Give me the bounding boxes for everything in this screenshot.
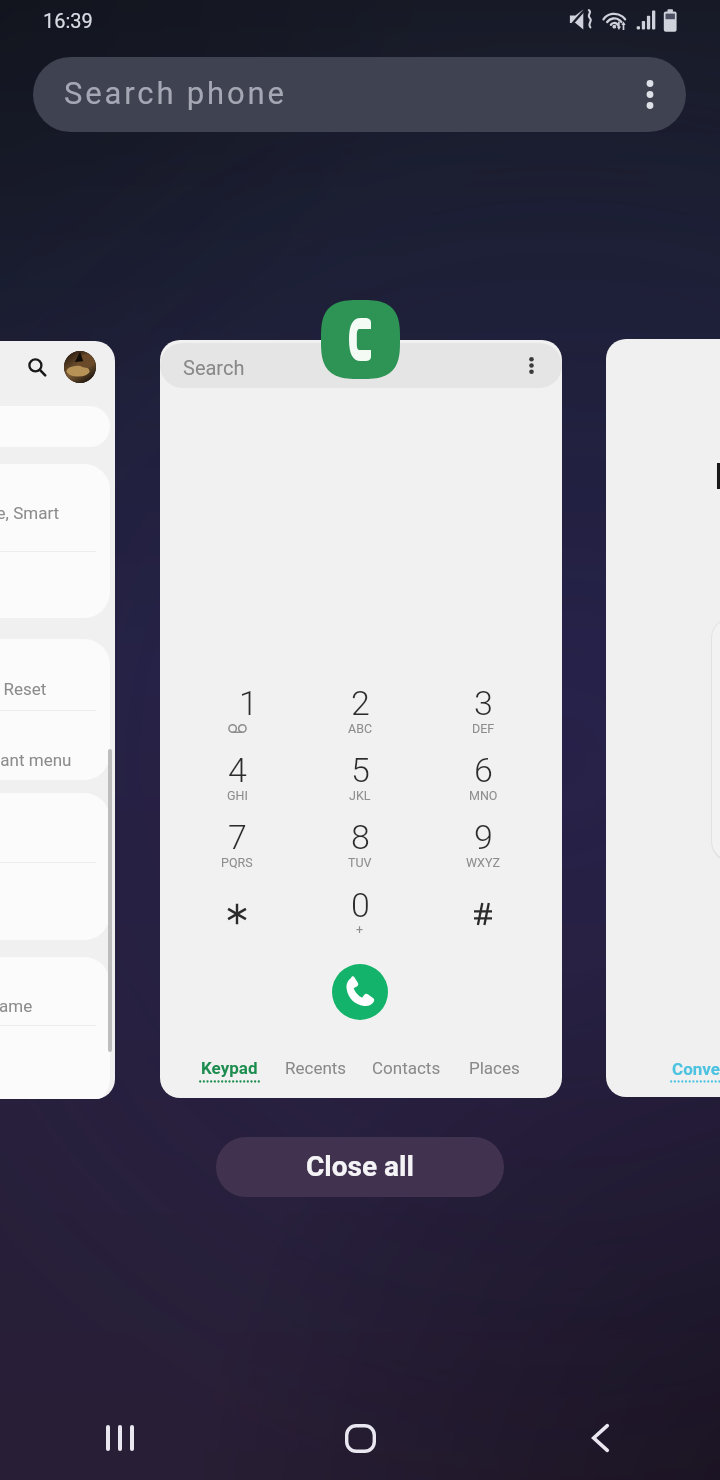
staticText: 1	[239, 683, 258, 723]
staticText: 8	[351, 817, 370, 857]
staticText: 5	[351, 750, 370, 790]
button[interactable]	[299, 671, 422, 738]
staticText: Search	[183, 356, 245, 379]
staticText: Close all	[306, 1150, 414, 1183]
button[interactable]: Search settings	[17, 347, 57, 387]
staticText: Conversations	[672, 1059, 720, 1079]
button[interactable]: Home	[240, 1402, 480, 1474]
button[interactable]	[299, 805, 422, 872]
staticText: +	[356, 922, 364, 937]
staticText: stant menu	[0, 750, 72, 770]
button[interactable]: Places	[442, 1058, 546, 1098]
staticText: ame	[0, 996, 33, 1016]
staticText: Search phone	[64, 75, 287, 111]
staticText: JKL	[349, 788, 371, 803]
staticText: WXYZ	[466, 855, 500, 870]
staticText: GHI	[227, 788, 248, 803]
button[interactable]: Call	[332, 964, 388, 1020]
button[interactable]: Messages	[606, 339, 720, 1097]
staticText: 3	[474, 683, 493, 723]
button[interactable]: Phone app	[321, 300, 400, 379]
staticText: PQRS	[221, 855, 253, 870]
button[interactable]: Recents	[0, 1402, 240, 1474]
button[interactable]: Profile	[64, 351, 96, 383]
button[interactable]	[176, 671, 299, 738]
button[interactable]	[299, 873, 422, 940]
button[interactable]: ame	[0, 957, 110, 1099]
button[interactable]: re, Smart	[0, 464, 110, 618]
staticText: 16:39	[43, 9, 93, 32]
button[interactable]: Recents	[264, 1058, 368, 1098]
staticText: Recents	[285, 1058, 347, 1078]
staticText: TUV	[348, 855, 372, 870]
button[interactable]: Search phone	[33, 57, 686, 132]
button[interactable]	[176, 738, 299, 805]
staticText: 0	[351, 885, 370, 925]
button[interactable]	[422, 805, 545, 872]
staticText: Contacts	[372, 1058, 441, 1078]
button[interactable]	[176, 873, 299, 940]
staticText: 9	[474, 817, 493, 857]
staticText: 6	[474, 750, 493, 790]
button[interactable]: More options	[626, 57, 674, 132]
button[interactable]	[0, 793, 110, 940]
button[interactable]: Back	[480, 1402, 720, 1474]
staticText: MNO	[469, 788, 498, 803]
button[interactable]: Search	[160, 340, 562, 1098]
button[interactable]: Close all	[216, 1137, 504, 1197]
staticText: 2	[351, 683, 370, 723]
staticText: ABC	[348, 721, 373, 736]
staticText: Places	[469, 1058, 520, 1078]
button[interactable]	[176, 805, 299, 872]
staticText: Keypad	[201, 1058, 258, 1078]
button[interactable]: Keypad	[177, 1058, 281, 1098]
button[interactable]: Search	[160, 343, 562, 388]
button[interactable]	[422, 738, 545, 805]
staticText: 7	[228, 817, 247, 857]
staticText: , Reset	[0, 679, 47, 699]
button[interactable]: , Reset	[0, 639, 110, 780]
staticText: DEF	[472, 721, 495, 736]
button[interactable]	[299, 738, 422, 805]
button[interactable]: Search settings	[0, 341, 115, 1099]
staticText: Messages	[714, 456, 720, 498]
button[interactable]	[422, 671, 545, 738]
button[interactable]: Contacts	[354, 1058, 458, 1098]
button[interactable]: Dialer options	[515, 343, 547, 388]
staticText: re, Smart	[0, 503, 60, 523]
staticText: 4	[228, 750, 247, 790]
button[interactable]	[422, 873, 545, 940]
